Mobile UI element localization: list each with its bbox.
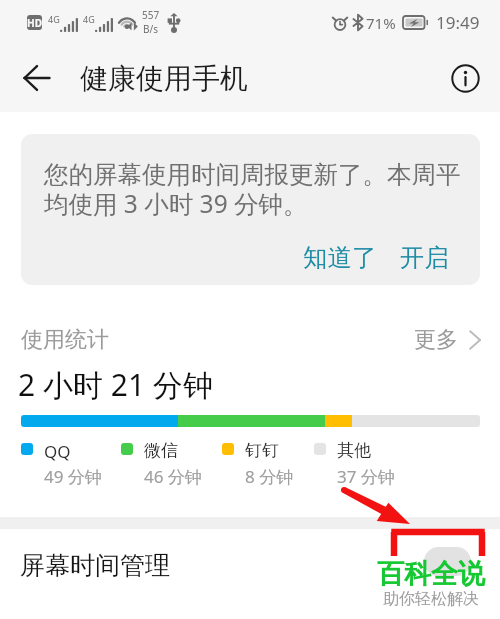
- button[interactable]: Back: [13, 54, 61, 102]
- button[interactable]: 使用统计: [0, 320, 500, 360]
- staticText: 更多: [414, 326, 458, 354]
- staticText: 4G: [83, 13, 95, 25]
- staticText: 46 分钟: [144, 465, 202, 488]
- staticText: 微信: [144, 440, 178, 461]
- button[interactable]: 开启: [391, 236, 457, 278]
- staticText: 其他: [337, 440, 371, 461]
- staticText: 您的屏幕使用时间周报更新了。本周平 均使用 3 小时 39 分钟。: [44, 159, 461, 220]
- staticText: 知道了: [303, 242, 377, 273]
- staticText: 开启: [400, 242, 449, 273]
- button[interactable]: 屏幕时间管理: [0, 529, 500, 597]
- staticText: 屏幕时间管理: [20, 550, 170, 581]
- staticText: 37 分钟: [337, 465, 395, 488]
- staticText: 71%: [366, 13, 396, 33]
- staticText: QQ: [44, 440, 71, 463]
- staticText: 使用统计: [21, 326, 109, 354]
- staticText: 健康使用手机: [80, 61, 248, 96]
- staticText: HD: [27, 16, 42, 30]
- button[interactable]: Info: [443, 56, 487, 100]
- staticText: 钉钉: [245, 440, 279, 461]
- staticText: 助你轻松解决: [383, 589, 479, 609]
- button[interactable]: 知道了: [296, 236, 384, 278]
- staticText: 8 分钟: [245, 465, 294, 488]
- staticText: 2 小时 21 分钟: [18, 364, 213, 405]
- staticText: 557: [142, 8, 160, 22]
- staticText: B/s: [143, 22, 159, 36]
- staticText: 4G: [48, 13, 60, 25]
- button[interactable]: Toggle: [424, 547, 471, 576]
- staticText: 百科全说: [377, 557, 485, 591]
- staticText: 49 分钟: [44, 465, 102, 488]
- staticText: 19:49: [436, 11, 480, 34]
